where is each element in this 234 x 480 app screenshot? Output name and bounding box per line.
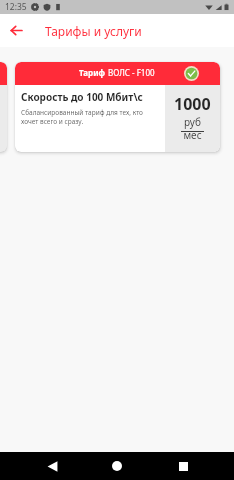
staticText: ВОЛС - F100: [108, 67, 155, 78]
staticText: 12:35: [5, 1, 27, 13]
button[interactable]: Тариф: [15, 62, 220, 152]
staticText: Тарифы и услуги: [45, 23, 142, 39]
staticText: Сбалансированный тариф для тех, кто хоче…: [21, 108, 160, 126]
staticText: Тариф: [79, 67, 108, 78]
staticText: руб: [184, 115, 201, 129]
staticText: Скорость до 100 Мбит\с: [21, 90, 143, 104]
button[interactable]: [0, 62, 7, 152]
button[interactable]: Recents: [169, 452, 197, 480]
staticText: мес: [183, 128, 202, 142]
button[interactable]: Back: [38, 452, 66, 480]
staticText: 1000: [174, 93, 211, 115]
button[interactable]: Back: [0, 14, 33, 47]
button[interactable]: Home: [103, 452, 131, 480]
